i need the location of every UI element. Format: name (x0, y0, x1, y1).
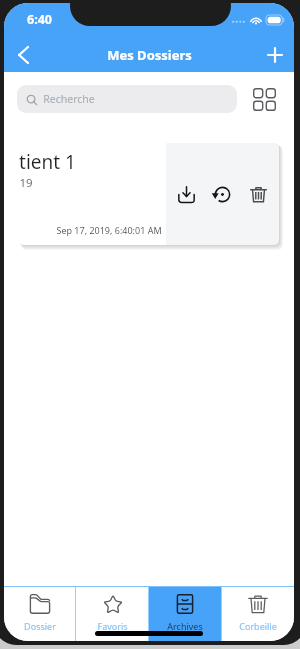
staticText: Archives (167, 620, 203, 632)
button[interactable]: Dossier (4, 587, 75, 641)
staticText: tient 1 (19, 149, 76, 175)
staticText: Dossier (24, 620, 56, 632)
button[interactable]: Recherche (17, 85, 237, 113)
staticText: Favoris (97, 620, 128, 632)
button[interactable]: Delete (240, 176, 276, 212)
button[interactable]: Restore (204, 176, 240, 212)
staticText: 19 (19, 175, 33, 191)
button[interactable]: Grid view (251, 86, 278, 113)
staticText: Recherche (43, 92, 95, 106)
button[interactable]: tient 1 (19, 143, 166, 245)
button[interactable]: Download (168, 176, 204, 212)
staticText: Corbeille (239, 620, 277, 632)
button[interactable]: Corbeille (222, 587, 294, 641)
staticText: Mes Dossiers (107, 46, 192, 64)
button[interactable]: Favoris (76, 587, 148, 641)
button[interactable]: Back (4, 37, 42, 72)
button[interactable]: Add (256, 37, 294, 72)
staticText: 6:40 (27, 11, 52, 28)
button[interactable]: Archives (149, 587, 221, 641)
staticText: Sep 17, 2019, 6:40:01 AM (56, 224, 162, 236)
